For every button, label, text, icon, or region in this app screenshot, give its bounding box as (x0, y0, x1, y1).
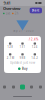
button[interactable]: 124 (29, 42, 41, 49)
button[interactable]: 14.2 (29, 53, 41, 60)
button[interactable]: 98B (16, 53, 29, 60)
staticText: 128 (7, 45, 13, 49)
button[interactable]: 128 (4, 42, 16, 49)
button[interactable]: Share (30, 8, 42, 13)
button[interactable]: Alerts (27, 81, 36, 93)
staticText: Live (6, 12, 11, 15)
staticText: 2.1M (7, 56, 14, 60)
button[interactable]: Buy (15, 66, 30, 72)
staticText: 2h (15, 12, 19, 15)
staticText: Buy (22, 67, 27, 70)
staticText: 124 (32, 45, 38, 49)
button[interactable]: Add (18, 81, 27, 93)
staticText: Share (32, 9, 40, 12)
staticText: -12.4% (28, 38, 38, 41)
staticText: 9:41 (3, 0, 10, 6)
staticText: 131 (19, 45, 25, 49)
staticText: Sep 21 · 2023 (13, 29, 34, 33)
button[interactable]: Profile (36, 81, 45, 93)
button[interactable]: Search (9, 81, 18, 93)
staticText: 98B (19, 56, 25, 60)
staticText: Updated just now (10, 61, 35, 64)
button[interactable]: Home (0, 81, 9, 93)
staticText: Overview (3, 6, 20, 11)
button[interactable]: 131 (16, 42, 29, 49)
button[interactable]: 2.1M (4, 53, 16, 60)
staticText: 14.2 (31, 56, 38, 60)
